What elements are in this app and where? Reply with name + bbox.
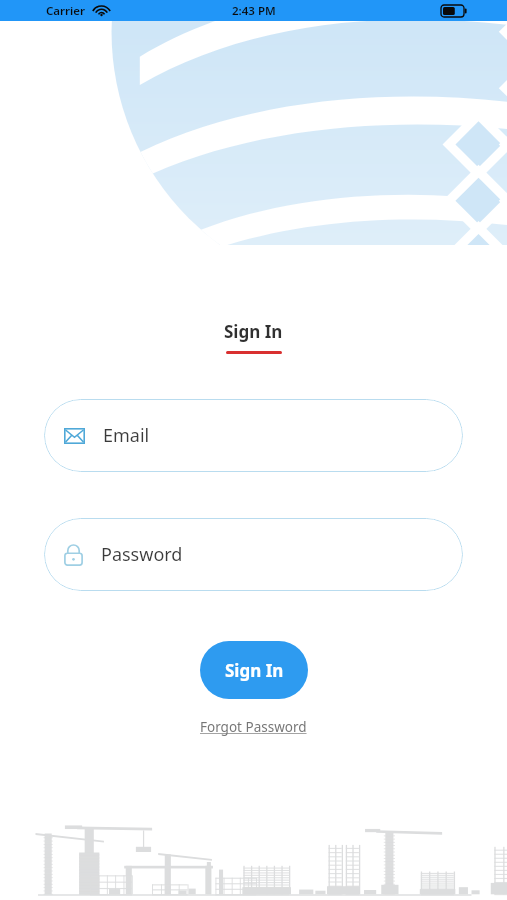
button[interactable]: Forgot Password	[194, 715, 313, 739]
staticText: Email	[103, 423, 150, 448]
staticText: Sign In	[224, 320, 283, 343]
button[interactable]: Sign In	[214, 318, 293, 356]
button[interactable]: Email	[44, 399, 463, 472]
staticText: Sign In	[225, 659, 284, 682]
button[interactable]: Password	[44, 518, 463, 591]
staticText: 2:43 PM	[232, 3, 276, 19]
staticText: Password	[101, 542, 183, 567]
staticText: Carrier	[46, 3, 86, 19]
button[interactable]: Sign In	[200, 641, 308, 699]
staticText: Forgot Password	[200, 718, 307, 736]
